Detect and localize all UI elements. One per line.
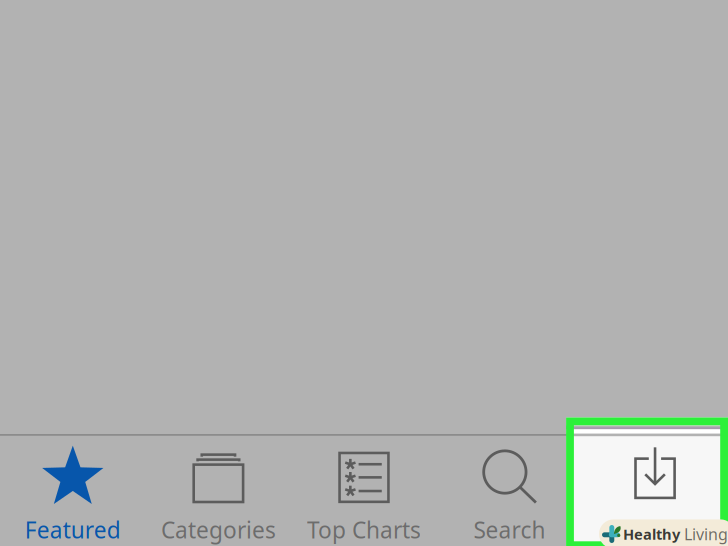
button[interactable]: Updates xyxy=(566,417,728,546)
staticText: Featured xyxy=(25,514,121,545)
button[interactable]: Categories xyxy=(146,435,291,546)
button[interactable]: Search xyxy=(437,435,582,546)
button[interactable]: Top Charts xyxy=(291,435,437,546)
staticText: Living xyxy=(680,523,728,545)
staticText: Top Charts xyxy=(307,514,421,545)
button[interactable]: Featured xyxy=(0,435,146,546)
staticText: Updates xyxy=(610,514,700,545)
staticText: Healthy xyxy=(623,524,680,544)
staticText: Categories xyxy=(161,514,276,545)
staticText: Search xyxy=(474,514,546,545)
